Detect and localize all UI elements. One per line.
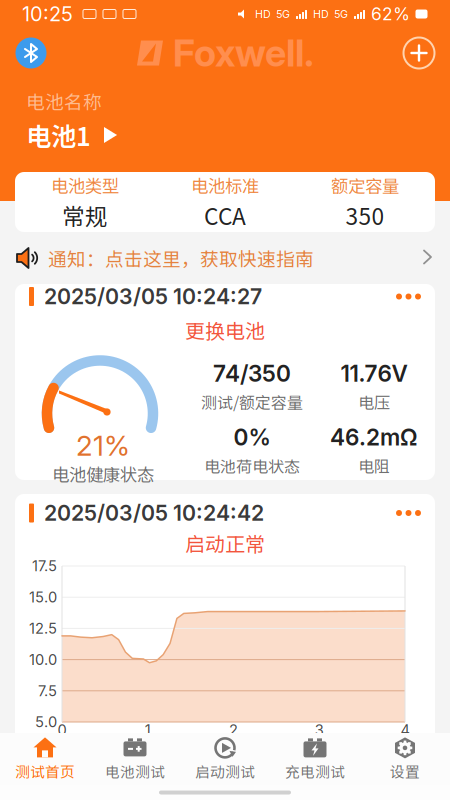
staticText: 74/350 bbox=[213, 360, 291, 387]
button[interactable]: 测试首页 bbox=[0, 733, 90, 785]
button[interactable]: More options bbox=[377, 498, 421, 528]
staticText: 测试/额定容量 bbox=[201, 390, 303, 413]
staticText: 1 bbox=[145, 721, 151, 739]
staticText: 2025/03/05 10:24:42 bbox=[44, 500, 264, 526]
button[interactable]: 电池1 bbox=[26, 122, 450, 148]
staticText: 更换电池 bbox=[185, 315, 265, 344]
button[interactable]: 通知：点击这里，获取快速指南 bbox=[0, 232, 450, 284]
staticText: 常规 bbox=[62, 199, 108, 231]
staticText: 0% bbox=[233, 423, 270, 451]
staticText: 2 bbox=[229, 721, 238, 739]
staticText: 5G bbox=[276, 7, 290, 20]
staticText: 350 bbox=[345, 199, 384, 231]
staticText: 电池类型 bbox=[51, 172, 119, 198]
button[interactable]: 电池测试 bbox=[90, 733, 180, 785]
staticText: 2025/03/05 10:24:27 bbox=[44, 284, 262, 309]
staticText: 62% bbox=[371, 3, 410, 24]
staticText: 额定容量 bbox=[331, 172, 399, 198]
staticText: 电池健康状态 bbox=[52, 461, 154, 486]
staticText: CCA bbox=[204, 199, 246, 231]
staticText: 3 bbox=[315, 721, 324, 739]
staticText: 启动正常 bbox=[185, 528, 265, 557]
staticText: 5.0 bbox=[35, 713, 57, 731]
staticText: 21% bbox=[76, 428, 130, 462]
staticText: 启动测试 bbox=[195, 760, 255, 782]
staticText: 通知：点击这里，获取快速指南 bbox=[48, 244, 314, 271]
staticText: 17.5 bbox=[32, 557, 57, 575]
staticText: HD bbox=[255, 7, 271, 20]
staticText: 7.5 bbox=[38, 682, 57, 700]
button[interactable]: More options bbox=[377, 281, 421, 311]
button[interactable]: Bluetooth bbox=[8, 30, 54, 76]
staticText: 电池测试 bbox=[105, 760, 165, 782]
staticText: Foxwell. bbox=[173, 30, 314, 76]
staticText: 电池1 bbox=[26, 117, 91, 153]
staticText: 设置 bbox=[390, 760, 420, 782]
staticText: 5G bbox=[334, 7, 348, 20]
staticText: 15.0 bbox=[29, 588, 57, 606]
button[interactable]: 设置 bbox=[360, 733, 450, 785]
staticText: 测试首页 bbox=[15, 760, 75, 782]
staticText: 10:25 bbox=[22, 2, 73, 26]
staticText: 12.5 bbox=[29, 619, 57, 637]
button[interactable]: 启动测试 bbox=[180, 733, 270, 785]
staticText: 电阻 bbox=[358, 454, 390, 477]
staticText: 11.76V bbox=[340, 360, 407, 387]
staticText: 电池名称 bbox=[26, 87, 102, 114]
staticText: HD bbox=[313, 7, 329, 20]
staticText: 10.0 bbox=[29, 651, 57, 668]
staticText: 46.2mΩ bbox=[330, 423, 418, 451]
staticText: 电池荷电状态 bbox=[204, 454, 300, 477]
staticText: 充电测试 bbox=[285, 760, 345, 782]
staticText: 电压 bbox=[358, 390, 390, 413]
button[interactable]: 充电测试 bbox=[270, 733, 360, 785]
staticText: 电池标准 bbox=[191, 172, 259, 198]
staticText: 0 bbox=[57, 721, 66, 739]
staticText: 4 bbox=[400, 721, 409, 739]
button[interactable]: Add battery bbox=[396, 30, 442, 76]
